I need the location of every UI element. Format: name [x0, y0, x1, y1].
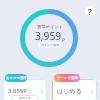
staticText: テーマで運用 [57, 76, 78, 80]
button[interactable]: ポイント履歴 [38, 42, 63, 48]
button[interactable]: はじめる [52, 74, 97, 100]
staticText: P [62, 37, 65, 43]
staticText: ? [88, 6, 92, 16]
button[interactable]: 運用する [11, 95, 39, 100]
staticText: 3,959P [8, 87, 27, 95]
staticText: 3,959 [35, 29, 62, 43]
staticText: おまかせ運用 [6, 76, 27, 80]
staticText: はじめる [57, 87, 82, 95]
staticText: 通常ポイント [37, 24, 63, 29]
staticText: ポイント履歴 [41, 43, 60, 47]
staticText: › [41, 87, 43, 95]
staticText: › [91, 87, 93, 95]
button[interactable]: Help [85, 6, 95, 16]
button[interactable]: 3,959P [3, 74, 47, 100]
staticText: 運用する [19, 96, 32, 100]
